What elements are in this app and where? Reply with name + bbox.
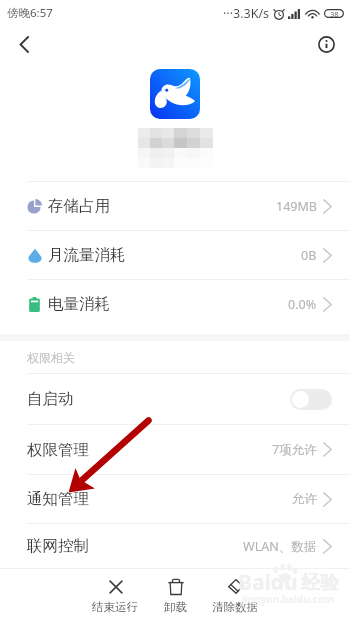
staticText: 通知管理 xyxy=(27,489,89,509)
button[interactable]: 自启动 xyxy=(0,374,350,424)
staticText: 权限相关 xyxy=(27,350,75,365)
staticText: 电量消耗 xyxy=(48,294,110,314)
staticText: 结束运行 xyxy=(92,600,138,614)
staticText: 经验 xyxy=(301,571,339,595)
staticText: 0.0% xyxy=(288,296,317,313)
staticText: 38 xyxy=(330,9,339,18)
staticText: ···3.3K/s xyxy=(223,5,270,22)
staticText: 傍晚6:57 xyxy=(7,5,53,21)
staticText: 月流量消耗 xyxy=(48,245,126,265)
staticText: Baidu xyxy=(238,568,298,597)
button[interactable]: 存储占用 xyxy=(0,182,350,230)
staticText: 存储占用 xyxy=(48,196,110,216)
staticText: WLAN、数据 xyxy=(243,538,317,555)
button[interactable]: 结束运行 xyxy=(85,569,145,614)
staticText: 7项允许 xyxy=(272,441,317,458)
staticText: 自启动 xyxy=(27,389,74,409)
staticText: 0B xyxy=(301,247,317,264)
staticText: 卸载 xyxy=(164,600,187,614)
button[interactable]: App info xyxy=(302,26,350,62)
button[interactable]: 卸载 xyxy=(145,569,205,614)
staticText: jingyan.baidu.com xyxy=(242,592,334,606)
staticText: 允许 xyxy=(292,491,317,507)
button[interactable]: 清除数据 xyxy=(205,569,265,614)
button[interactable]: 联网控制 xyxy=(0,524,350,568)
staticText: 联网控制 xyxy=(27,536,89,556)
button[interactable]: 月流量消耗 xyxy=(0,231,350,279)
staticText: 149MB xyxy=(276,198,317,215)
staticText: 清除数据 xyxy=(212,600,258,614)
button[interactable]: 权限管理 xyxy=(0,425,350,474)
button[interactable]: 通知管理 xyxy=(0,475,350,523)
button[interactable]: Back xyxy=(0,26,48,62)
staticText: 权限管理 xyxy=(27,440,89,460)
button[interactable]: 电量消耗 xyxy=(0,280,350,328)
